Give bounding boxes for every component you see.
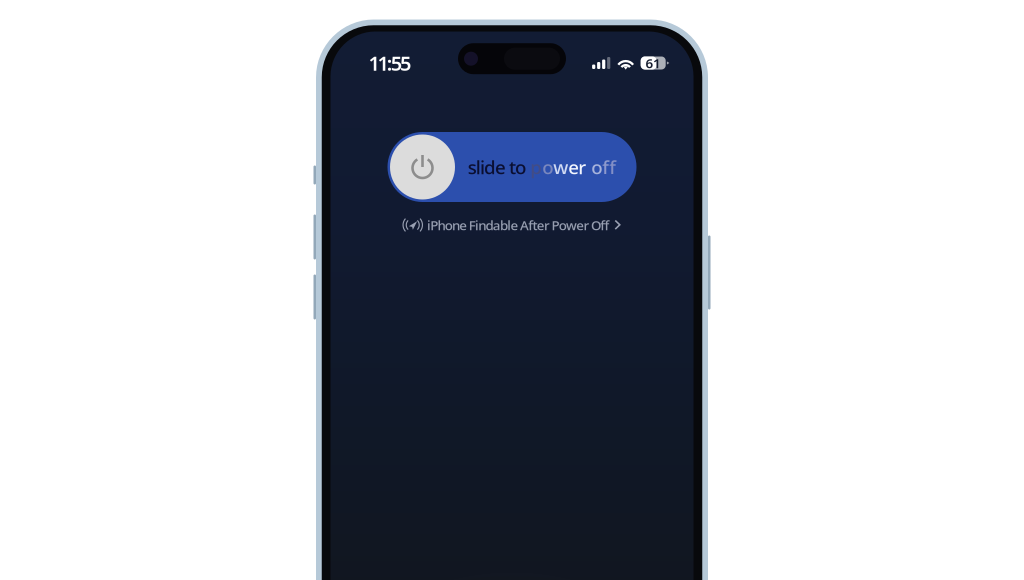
staticText: slide to [468, 154, 530, 180]
staticText: 11:55 [368, 49, 411, 77]
button[interactable]: iPhone Findable After Power Off [403, 215, 621, 235]
staticText: 61 [645, 54, 661, 72]
staticText: iPhone Findable After Power Off [427, 216, 609, 234]
staticText: f [602, 154, 609, 180]
staticText: w [553, 154, 568, 180]
button[interactable]: slide to [387, 132, 636, 202]
staticText: er [568, 154, 586, 180]
staticText: p [530, 154, 542, 180]
staticText: f [609, 154, 616, 180]
staticText: o [542, 154, 553, 180]
staticText: o [591, 154, 602, 180]
